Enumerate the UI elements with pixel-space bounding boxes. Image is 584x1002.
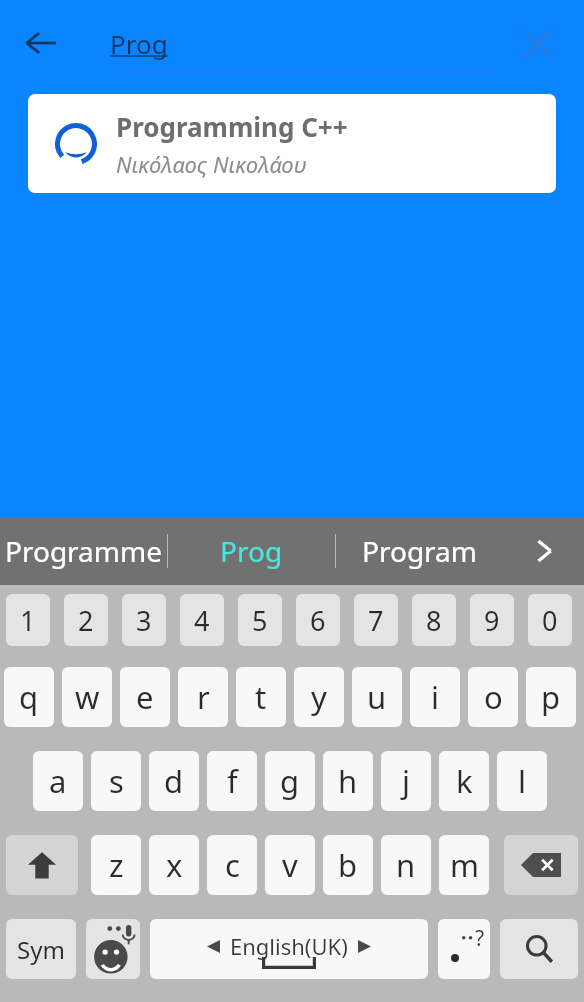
staticText: Νικόλαος Νικολάου <box>116 149 307 179</box>
staticText: i <box>431 676 439 718</box>
button[interactable]: Program <box>336 517 503 585</box>
button[interactable]: 4 <box>180 594 224 646</box>
staticText: 2 <box>78 602 94 639</box>
staticText: c <box>225 844 240 886</box>
button[interactable]: r <box>178 667 228 727</box>
button[interactable]: p <box>526 667 576 727</box>
staticText: v <box>282 844 298 886</box>
staticText: Prog <box>110 26 168 61</box>
staticText: 6 <box>310 602 326 639</box>
staticText: Programming C++ <box>116 109 348 144</box>
staticText: s <box>109 760 124 802</box>
staticText: d <box>164 760 184 802</box>
button[interactable]: i <box>410 667 460 727</box>
button[interactable]: Space, English (UK) <box>150 919 428 979</box>
button[interactable]: More suggestions <box>503 517 584 585</box>
staticText: h <box>338 760 358 802</box>
staticText: 5 <box>252 602 268 639</box>
staticText: q <box>19 676 39 718</box>
staticText: t <box>255 676 267 718</box>
staticText: o <box>484 676 503 718</box>
staticText: f <box>227 760 238 802</box>
staticText: a <box>49 760 67 802</box>
button[interactable]: 0 <box>528 594 572 646</box>
staticText: 3 <box>136 602 152 639</box>
button[interactable]: 8 <box>412 594 456 646</box>
button[interactable]: b <box>323 835 373 895</box>
button[interactable]: 6 <box>296 594 340 646</box>
button[interactable]: Shift <box>6 835 78 895</box>
button[interactable]: Period and punctuation <box>438 919 490 979</box>
button[interactable]: y <box>294 667 344 727</box>
button[interactable]: m <box>439 835 489 895</box>
button[interactable]: Sym <box>6 919 76 979</box>
button[interactable]: k <box>439 751 489 811</box>
staticText: 0 <box>542 602 558 639</box>
button[interactable]: Clear search <box>508 14 566 72</box>
staticText: u <box>367 676 387 718</box>
staticText: English(UK) <box>230 931 348 961</box>
staticText: l <box>518 760 526 802</box>
button[interactable]: w <box>62 667 112 727</box>
staticText: w <box>75 676 100 718</box>
button[interactable]: j <box>381 751 431 811</box>
button[interactable]: h <box>323 751 373 811</box>
button[interactable]: x <box>149 835 199 895</box>
button[interactable]: Backspace <box>504 835 578 895</box>
button[interactable]: 1 <box>6 594 50 646</box>
staticText: y <box>311 676 327 718</box>
button[interactable]: Back <box>12 14 70 72</box>
staticText: Prog <box>220 532 283 570</box>
button[interactable]: 2 <box>64 594 108 646</box>
button[interactable]: Emoji and voice input <box>86 919 140 979</box>
staticText: 9 <box>484 602 500 639</box>
button[interactable]: u <box>352 667 402 727</box>
staticText: 8 <box>426 602 442 639</box>
staticText: ? <box>475 924 485 953</box>
staticText: g <box>280 760 300 802</box>
button[interactable]: c <box>207 835 257 895</box>
button[interactable]: o <box>468 667 518 727</box>
button[interactable]: v <box>265 835 315 895</box>
button[interactable]: z <box>91 835 141 895</box>
button[interactable]: s <box>91 751 141 811</box>
staticText: Programme <box>5 532 162 570</box>
staticText: 4 <box>194 602 210 639</box>
button[interactable]: e <box>120 667 170 727</box>
staticText: e <box>136 676 154 718</box>
staticText: Program <box>362 532 477 570</box>
staticText: z <box>109 844 124 886</box>
button[interactable]: 9 <box>470 594 514 646</box>
staticText: Sym <box>17 933 65 966</box>
button[interactable]: 7 <box>354 594 398 646</box>
button[interactable]: f <box>207 751 257 811</box>
button[interactable]: Programme <box>0 517 167 585</box>
staticText: r <box>197 676 210 718</box>
staticText: b <box>338 844 358 886</box>
staticText: p <box>541 676 561 718</box>
button[interactable]: q <box>4 667 54 727</box>
button[interactable]: 3 <box>122 594 166 646</box>
button[interactable]: n <box>381 835 431 895</box>
button[interactable]: Prog <box>110 16 495 70</box>
staticText: j <box>402 760 410 802</box>
button[interactable]: g <box>265 751 315 811</box>
button[interactable]: d <box>149 751 199 811</box>
staticText: k <box>456 760 473 802</box>
staticText: 7 <box>368 602 384 639</box>
button[interactable]: Prog <box>168 517 335 585</box>
button[interactable]: Search <box>500 919 578 979</box>
staticText: n <box>396 844 416 886</box>
button[interactable]: t <box>236 667 286 727</box>
button[interactable]: a <box>33 751 83 811</box>
button[interactable]: Programming C++ <box>28 94 556 193</box>
button[interactable]: 5 <box>238 594 282 646</box>
button[interactable]: l <box>497 751 547 811</box>
staticText: m <box>450 844 479 886</box>
staticText: x <box>166 844 183 886</box>
staticText: 1 <box>20 602 36 639</box>
